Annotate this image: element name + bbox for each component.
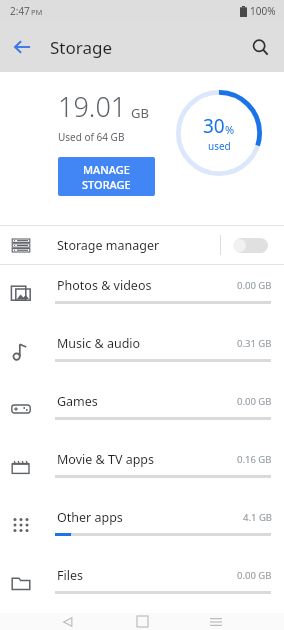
button[interactable]: Music & audio bbox=[0, 323, 284, 381]
staticText: Storage manager bbox=[57, 237, 160, 254]
staticText: % bbox=[225, 122, 235, 137]
staticText: 2:47 bbox=[10, 4, 30, 18]
staticText: 4.1 GB bbox=[243, 511, 272, 524]
staticText: Photos & videos bbox=[57, 277, 152, 294]
button[interactable]: Photos & videos bbox=[0, 265, 284, 323]
staticText: 30 bbox=[203, 113, 225, 139]
button[interactable]: MANAGE bbox=[58, 157, 155, 196]
staticText: 0.00 GB bbox=[237, 395, 272, 408]
staticText: Storage bbox=[50, 36, 113, 59]
button[interactable]: Home bbox=[129, 613, 155, 630]
staticText: MANAGE bbox=[83, 162, 130, 177]
button[interactable]: Games bbox=[0, 381, 284, 439]
button[interactable]: Storage manager toggle bbox=[232, 232, 270, 258]
button[interactable]: Other apps bbox=[0, 497, 284, 555]
staticText: Music & audio bbox=[57, 335, 141, 352]
staticText: Movie & TV apps bbox=[57, 451, 155, 468]
staticText: 100% bbox=[250, 4, 276, 18]
button[interactable]: Movie & TV apps bbox=[0, 439, 284, 497]
button[interactable]: Storage manager bbox=[0, 226, 284, 264]
staticText: PM bbox=[31, 7, 43, 17]
staticText: GB bbox=[131, 104, 149, 122]
button[interactable]: Search bbox=[242, 29, 278, 65]
staticText: STORAGE bbox=[82, 177, 131, 192]
staticText: Other apps bbox=[57, 509, 123, 526]
staticText: Games bbox=[57, 393, 98, 410]
staticText: used bbox=[208, 139, 231, 153]
staticText: 0.31 GB bbox=[237, 337, 272, 350]
button[interactable]: Files bbox=[0, 555, 284, 613]
staticText: 0.00 GB bbox=[237, 279, 272, 292]
staticText: Files bbox=[57, 567, 83, 584]
button[interactable]: Recent apps bbox=[203, 613, 229, 630]
staticText: 0.16 GB bbox=[237, 453, 272, 466]
staticText: Used of 64 GB bbox=[58, 130, 125, 144]
staticText: 19.01 bbox=[58, 88, 127, 125]
button[interactable]: Back bbox=[55, 613, 81, 630]
staticText: 0.00 GB bbox=[237, 569, 272, 582]
button[interactable]: Back bbox=[4, 29, 40, 65]
